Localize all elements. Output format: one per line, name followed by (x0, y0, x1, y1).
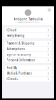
button[interactable]: Subscriptions (5, 46, 51, 52)
staticText: Media & Purchases (7, 72, 32, 75)
button[interactable]: Personal Information (5, 57, 51, 63)
staticText: iCloud+ (7, 77, 19, 81)
button[interactable]: iCloud+ (5, 76, 51, 82)
staticText: Subscriptions (7, 47, 25, 51)
staticText: Antigone Tsardoulias (13, 17, 42, 21)
button[interactable]: Family Sharing (5, 33, 51, 38)
staticText: Payment & Shipping (7, 42, 35, 45)
staticText: iCloud (7, 28, 17, 32)
button[interactable]: Find My (5, 65, 51, 70)
button[interactable]: Account options (48, 8, 51, 12)
staticText: Family Sharing (7, 34, 25, 37)
staticText: Sign-In & Security (7, 53, 31, 56)
button[interactable]: Sign-In & Security (5, 52, 51, 57)
staticText: Personal Information (7, 58, 36, 62)
staticText: Find My (7, 66, 17, 70)
button[interactable]: Media & Purchases (5, 71, 51, 76)
staticText: Apple ID, iCloud, Media & Purchases (16, 21, 39, 23)
button[interactable]: Payment & Shipping (5, 41, 51, 46)
button[interactable]: iCloud (5, 27, 51, 33)
